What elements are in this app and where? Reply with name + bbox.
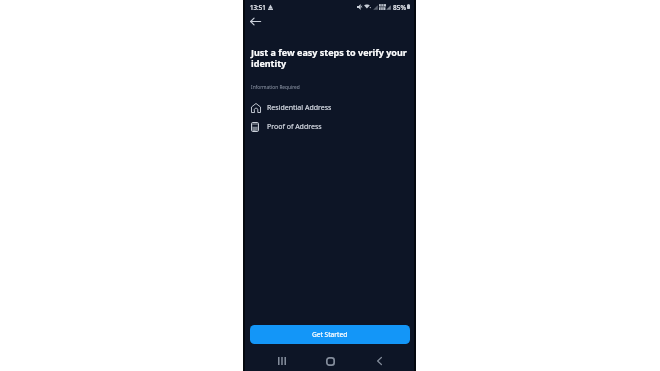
button[interactable]: Recent apps	[270, 349, 294, 371]
button[interactable]: Back	[367, 349, 391, 371]
staticText: Proof of Address	[267, 122, 322, 132]
button[interactable]: Proof of Address	[245, 117, 414, 136]
staticText: Residential Address	[267, 103, 332, 113]
staticText: Get Started	[312, 330, 348, 339]
button[interactable]: Residential Address	[245, 98, 414, 117]
button[interactable]: Home	[318, 349, 342, 371]
button[interactable]: Get Started	[250, 325, 410, 344]
staticText: Information Required	[251, 84, 300, 91]
staticText: 85%	[393, 3, 406, 12]
staticText: Just a few easy steps to verify your ide…	[251, 46, 408, 70]
staticText: 13:51	[250, 3, 266, 11]
button[interactable]: Back	[246, 12, 265, 30]
